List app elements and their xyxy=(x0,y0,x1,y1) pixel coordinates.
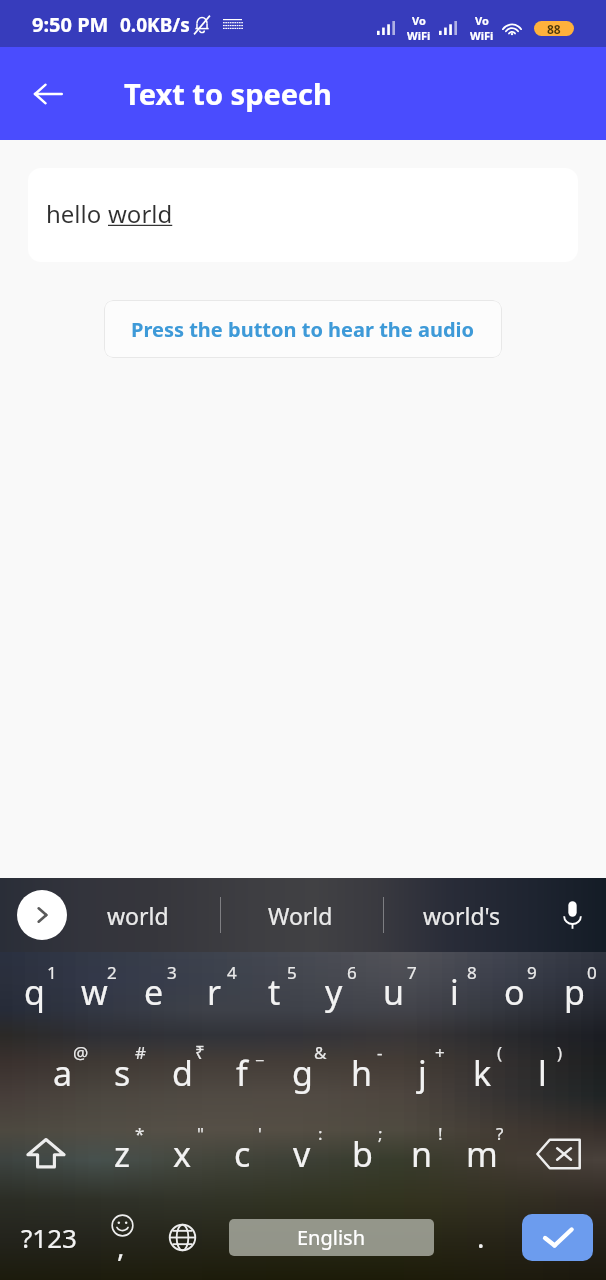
staticText: d xyxy=(172,1050,193,1096)
button[interactable]: a xyxy=(33,1032,92,1113)
button[interactable]: Press the button to hear the audio xyxy=(104,300,502,358)
staticText: 3 xyxy=(167,961,177,984)
staticText: c xyxy=(234,1131,251,1177)
staticText: r xyxy=(207,969,222,1015)
staticText: , xyxy=(117,1227,125,1265)
staticText: 7 xyxy=(407,961,417,984)
staticText: b xyxy=(352,1131,373,1177)
staticText: o xyxy=(504,969,525,1015)
staticText: " xyxy=(197,1122,204,1145)
staticText: - xyxy=(377,1041,383,1064)
button[interactable]: x xyxy=(152,1113,212,1194)
staticText: w xyxy=(81,969,108,1015)
staticText: _ xyxy=(256,1041,264,1064)
staticText: m xyxy=(466,1131,498,1177)
button[interactable]: world xyxy=(74,878,202,952)
button[interactable]: j xyxy=(392,1032,452,1113)
staticText: x xyxy=(173,1131,191,1177)
staticText: : xyxy=(318,1122,323,1145)
staticText: ' xyxy=(258,1122,262,1145)
button[interactable]: Voice input xyxy=(546,878,598,952)
staticText: i xyxy=(450,969,459,1015)
staticText: k xyxy=(473,1050,492,1096)
staticText: z xyxy=(114,1131,130,1177)
staticText: ! xyxy=(438,1122,443,1145)
button[interactable]: Shift xyxy=(0,1113,92,1194)
staticText: @ xyxy=(73,1041,89,1064)
staticText: hello xyxy=(46,197,108,230)
staticText: n xyxy=(411,1131,433,1177)
button[interactable]: . xyxy=(452,1194,510,1280)
staticText: p xyxy=(564,969,585,1015)
button[interactable]: m xyxy=(452,1113,512,1194)
button[interactable]: c xyxy=(212,1113,272,1194)
button[interactable]: ?123 xyxy=(3,1194,94,1280)
staticText: * xyxy=(135,1122,145,1145)
button[interactable]: q xyxy=(4,952,64,1032)
button[interactable]: Enter xyxy=(522,1214,593,1261)
staticText: q xyxy=(24,969,45,1015)
button[interactable]: s xyxy=(92,1032,152,1113)
button[interactable]: e xyxy=(124,952,184,1032)
button[interactable]: World xyxy=(238,878,362,952)
staticText: 0.0KB/s xyxy=(120,12,190,38)
staticText: Text to speech xyxy=(124,74,332,113)
button[interactable]: k xyxy=(452,1032,512,1113)
button[interactable]: i xyxy=(424,952,484,1032)
staticText: u xyxy=(383,969,405,1015)
button[interactable]: z xyxy=(92,1113,152,1194)
staticText: t xyxy=(268,969,281,1015)
staticText: . xyxy=(477,1218,485,1256)
staticText: 88 xyxy=(547,21,561,36)
staticText: 5 xyxy=(287,961,297,984)
staticText: 1 xyxy=(47,961,57,984)
button[interactable]: Emoji xyxy=(94,1194,150,1280)
staticText: English xyxy=(297,1224,366,1251)
button[interactable]: v xyxy=(272,1113,332,1194)
button[interactable]: u xyxy=(364,952,424,1032)
button[interactable]: n xyxy=(392,1113,452,1194)
staticText: World xyxy=(268,900,333,931)
staticText: 8 xyxy=(467,961,477,984)
button[interactable]: w xyxy=(64,952,124,1032)
staticText: world xyxy=(107,900,169,931)
staticText: ? xyxy=(496,1122,504,1145)
staticText: ₹ xyxy=(195,1041,205,1064)
staticText: j xyxy=(418,1050,427,1096)
button[interactable]: l xyxy=(512,1032,572,1113)
button[interactable]: f xyxy=(212,1032,272,1113)
button[interactable]: b xyxy=(332,1113,392,1194)
staticText: 9:50 PM xyxy=(32,11,109,38)
staticText: 2 xyxy=(107,961,117,984)
button[interactable]: h xyxy=(332,1032,392,1113)
button[interactable]: Change language xyxy=(154,1194,210,1280)
button[interactable]: Back xyxy=(20,66,76,122)
staticText: world xyxy=(108,197,173,230)
staticText: v xyxy=(293,1131,311,1177)
staticText: # xyxy=(135,1041,146,1064)
staticText: a xyxy=(53,1050,73,1096)
button[interactable]: world's xyxy=(400,878,524,952)
staticText: 6 xyxy=(347,961,357,984)
staticText: h xyxy=(351,1050,373,1096)
button[interactable]: y xyxy=(304,952,364,1032)
button[interactable]: Backspace xyxy=(512,1113,606,1194)
button[interactable]: o xyxy=(484,952,544,1032)
staticText: & xyxy=(314,1041,327,1064)
staticText: WiFi xyxy=(470,28,494,43)
staticText: ?123 xyxy=(21,1220,77,1255)
staticText: f xyxy=(236,1050,248,1096)
button[interactable]: r xyxy=(184,952,244,1032)
button[interactable]: d xyxy=(152,1032,212,1113)
button[interactable]: g xyxy=(272,1032,332,1113)
button[interactable]: More suggestions xyxy=(17,890,67,940)
staticText: y xyxy=(325,969,343,1015)
button[interactable]: p xyxy=(544,952,604,1032)
button[interactable]: English xyxy=(229,1219,434,1256)
button[interactable]: t xyxy=(244,952,304,1032)
button[interactable]: hello xyxy=(28,168,578,262)
staticText: WiFi xyxy=(407,28,431,43)
staticText: s xyxy=(114,1050,131,1096)
staticText: Vo xyxy=(475,13,489,28)
staticText: 9 xyxy=(527,961,537,984)
